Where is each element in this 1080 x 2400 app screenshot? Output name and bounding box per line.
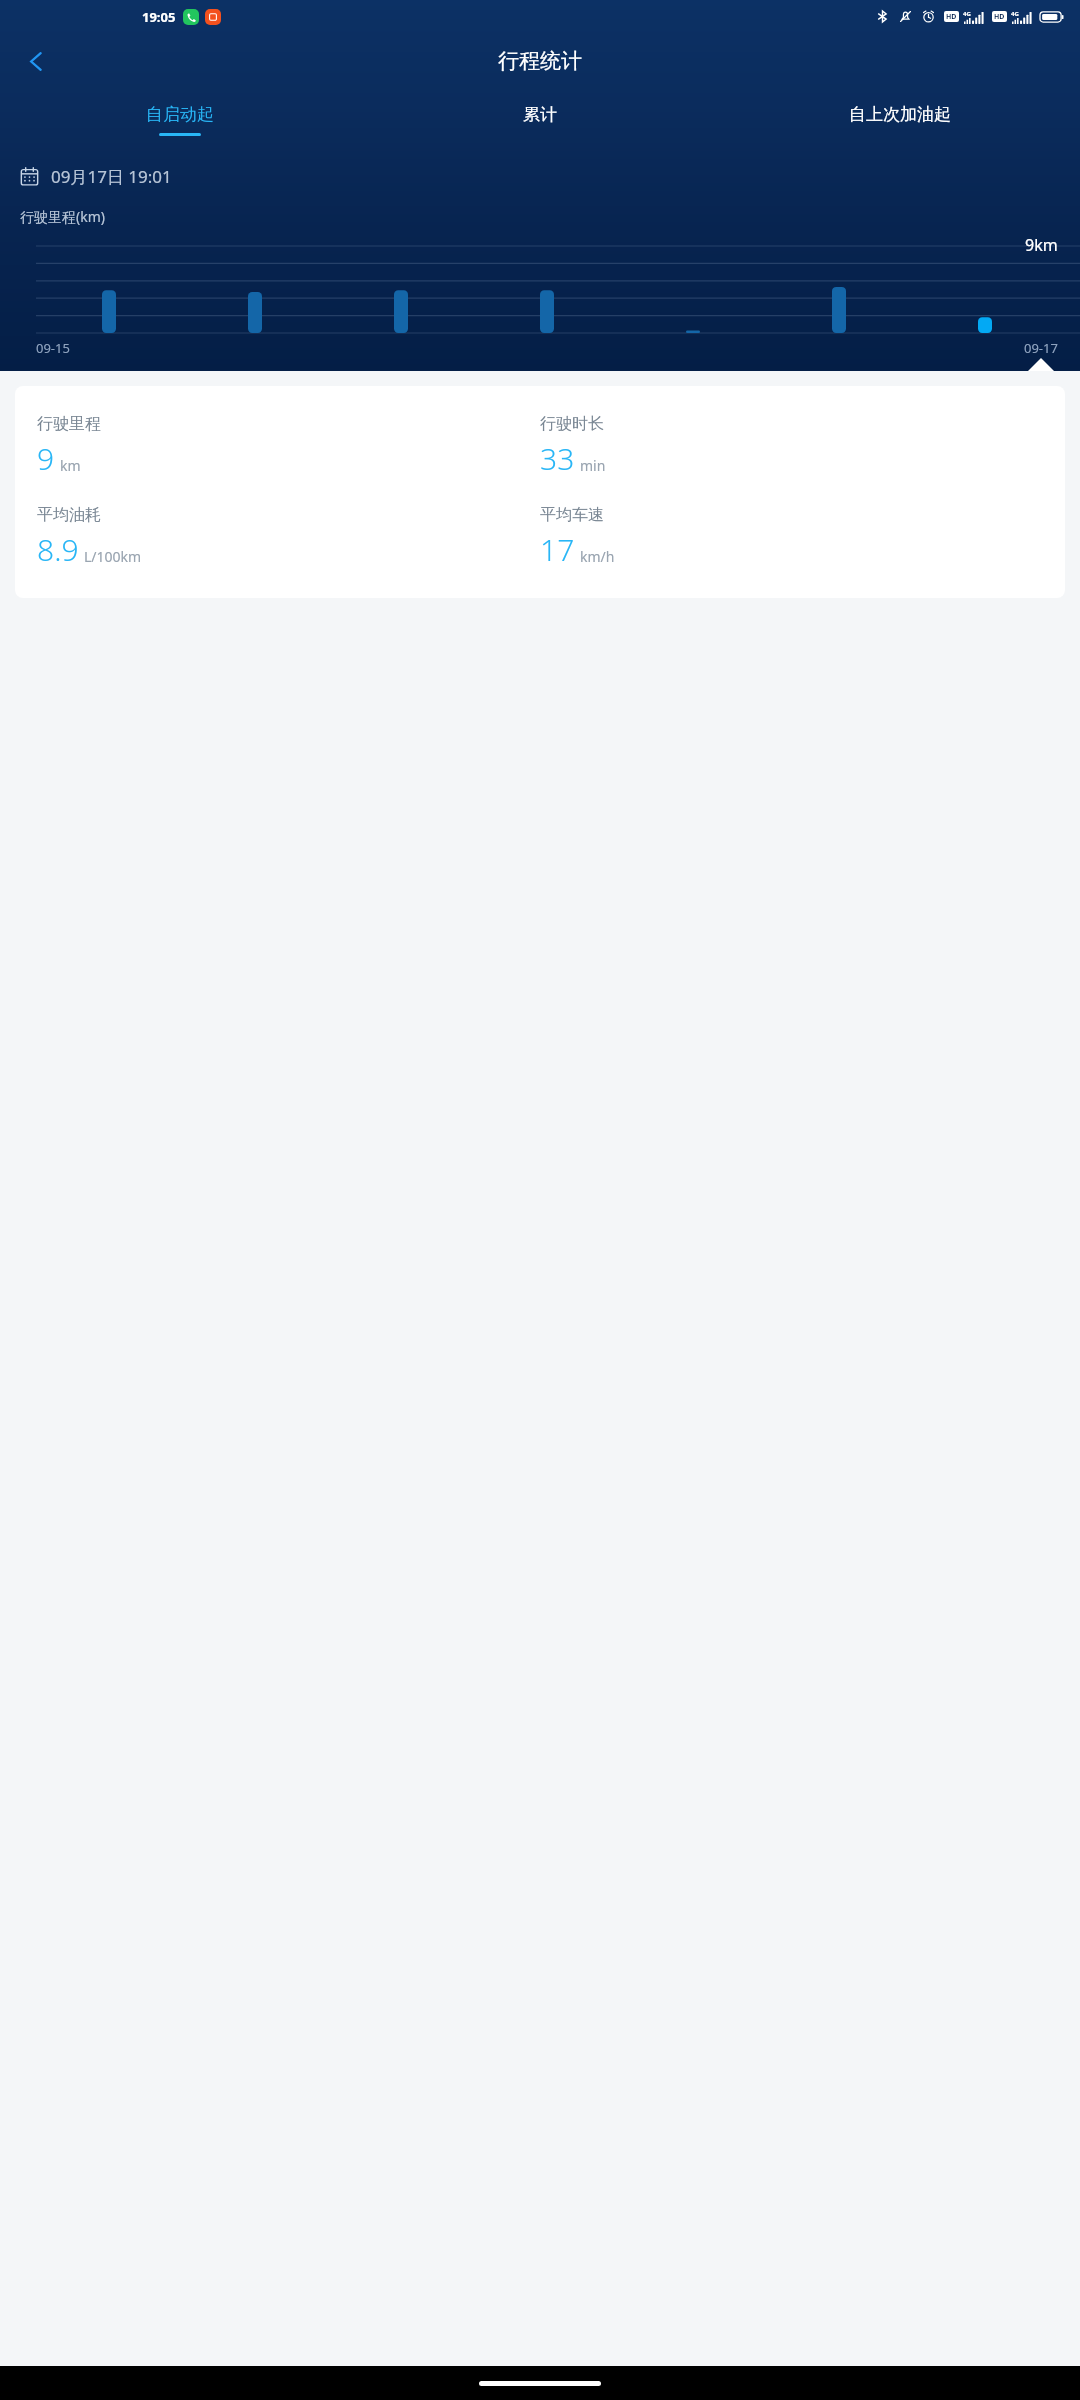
staticText: 平均车速 bbox=[540, 505, 604, 525]
staticText: 行驶里程 bbox=[37, 414, 101, 434]
staticText: 行程统计 bbox=[498, 48, 582, 74]
staticText: 4G bbox=[963, 10, 971, 18]
staticText: 行驶时长 bbox=[540, 414, 604, 434]
staticText: 09月17日 19:01 bbox=[51, 165, 172, 188]
staticText: 8.9 bbox=[37, 529, 79, 570]
staticText: 09-15 bbox=[36, 339, 70, 357]
staticText: 17 bbox=[540, 529, 575, 570]
staticText: HD bbox=[946, 12, 957, 22]
button[interactable]: 行驶里程 bbox=[15, 386, 1065, 598]
staticText: min bbox=[580, 456, 606, 475]
staticText: 平均油耗 bbox=[37, 505, 101, 525]
staticText: 累计 bbox=[523, 104, 557, 125]
staticText: 自上次加油起 bbox=[849, 104, 951, 125]
button[interactable]: 行驶时长 bbox=[540, 414, 1043, 479]
button[interactable]: 累计 bbox=[360, 89, 720, 151]
staticText: 09-17 bbox=[1024, 339, 1058, 357]
button[interactable]: Back bbox=[12, 37, 60, 85]
button[interactable]: 平均车速 bbox=[540, 505, 1043, 570]
staticText: 19:05 bbox=[142, 8, 176, 26]
staticText: HD bbox=[994, 12, 1005, 22]
button[interactable]: 自上次加油起 bbox=[720, 89, 1080, 151]
button[interactable]: 自启动起 bbox=[0, 89, 360, 151]
staticText: km/h bbox=[580, 547, 615, 566]
button[interactable]: 平均油耗 bbox=[37, 505, 540, 570]
staticText: 9 bbox=[37, 438, 55, 479]
staticText: L/100km bbox=[84, 547, 142, 566]
staticText: 9km bbox=[1025, 234, 1058, 251]
button[interactable]: 行驶里程 bbox=[37, 414, 540, 479]
staticText: 行驶里程(km) bbox=[20, 207, 105, 226]
staticText: km bbox=[60, 456, 81, 475]
staticText: 自启动起 bbox=[146, 104, 214, 125]
staticText: 4G bbox=[1011, 10, 1019, 18]
staticText: 33 bbox=[540, 438, 575, 479]
